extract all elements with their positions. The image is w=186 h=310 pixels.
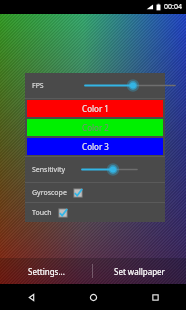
button[interactable]: Back: [0, 284, 62, 310]
staticText: Set wallpaper: [114, 266, 165, 277]
button[interactable]: Color 2: [27, 119, 163, 136]
staticText: Settings...: [28, 266, 65, 277]
button[interactable]: Gyroscope: [25, 183, 165, 202]
staticText: Color 1: [82, 103, 109, 114]
button[interactable]: Settings...: [0, 258, 92, 284]
button[interactable]: Set wallpaper: [93, 258, 186, 284]
button[interactable]: Color 1: [27, 100, 163, 117]
button[interactable]: Home: [62, 284, 124, 310]
button[interactable]: Color 3: [27, 138, 163, 155]
staticText: 00:04: [164, 2, 182, 12]
staticText: Touch: [32, 208, 52, 218]
staticText: Sensitivity: [32, 165, 66, 175]
button[interactable]: Sensitivity: [25, 157, 165, 182]
staticText: Color 2: [82, 122, 109, 133]
button[interactable]: FPS: [25, 73, 165, 98]
staticText: FPS: [32, 81, 44, 91]
button[interactable]: Recents: [124, 284, 186, 310]
staticText: Color 3: [82, 141, 109, 152]
button[interactable]: Touch: [25, 203, 165, 222]
staticText: Gyroscope: [32, 188, 67, 198]
